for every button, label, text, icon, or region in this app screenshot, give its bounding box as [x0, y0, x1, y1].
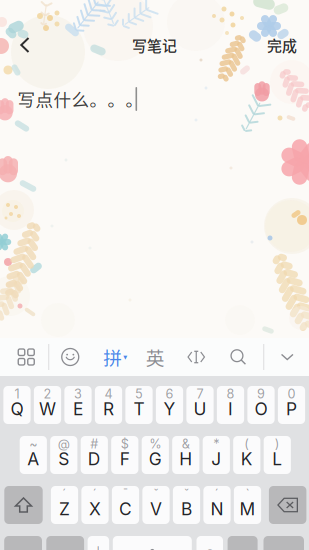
- button[interactable]: Return: [263, 536, 304, 550]
- staticText: ~: [29, 436, 37, 452]
- button[interactable]: Back: [10, 23, 40, 67]
- staticText: F: [120, 448, 130, 469]
- button[interactable]: Emoji: [55, 338, 85, 376]
- staticText: P: [286, 398, 297, 419]
- staticText: X: [89, 498, 101, 519]
- button[interactable]: 2: [34, 386, 61, 424]
- staticText: U: [193, 398, 206, 419]
- button[interactable]: ): [264, 436, 291, 474]
- button[interactable]: Move cursor: [183, 338, 209, 376]
- button[interactable]: ˊ: [51, 486, 78, 524]
- button[interactable]: Vertical bar: [88, 536, 109, 550]
- staticText: ˇ: [153, 486, 158, 502]
- staticText: D: [88, 448, 101, 469]
- button[interactable]: Numbers: [4, 536, 42, 550]
- button[interactable]: 4: [95, 386, 122, 424]
- staticText: S: [58, 448, 69, 469]
- staticText: 写笔记: [132, 34, 177, 56]
- button[interactable]: #: [81, 436, 108, 474]
- staticText: 完成: [267, 34, 297, 56]
- button[interactable]: Keyboard layouts: [11, 338, 41, 376]
- staticText: $: [121, 436, 129, 452]
- button[interactable]: 3: [64, 386, 92, 424]
- button[interactable]: 完成: [260, 23, 304, 67]
- staticText: Z: [59, 498, 70, 519]
- staticText: (: [244, 436, 249, 452]
- staticText: 4: [104, 386, 112, 402]
- staticText: ?: [206, 546, 213, 550]
- staticText: L: [272, 448, 282, 469]
- staticText: ˊ: [92, 486, 97, 502]
- button[interactable]: &: [172, 436, 199, 474]
- staticText: V: [150, 498, 162, 519]
- button[interactable]: ˇ: [142, 486, 170, 524]
- staticText: 写点什么。。。: [17, 86, 143, 111]
- staticText: J: [211, 448, 221, 469]
- staticText: K: [241, 448, 253, 469]
- staticText: M: [239, 498, 255, 519]
- staticText: ): [275, 436, 280, 452]
- staticText: ▾: [123, 352, 127, 362]
- button[interactable]: 6: [156, 386, 183, 424]
- staticText: H: [179, 448, 192, 469]
- staticText: ˋ: [245, 486, 250, 502]
- staticText: |: [96, 546, 101, 550]
- button[interactable]: Symbols: [228, 536, 258, 550]
- staticText: %: [149, 436, 161, 452]
- button[interactable]: ˉ: [112, 486, 139, 524]
- staticText: &: [182, 436, 190, 452]
- button[interactable]: 5: [125, 386, 153, 424]
- button[interactable]: Shift: [4, 486, 43, 524]
- staticText: A: [27, 448, 39, 469]
- staticText: @: [58, 436, 70, 452]
- staticText: *: [213, 436, 219, 452]
- staticText: O: [254, 398, 267, 419]
- staticText: ˊ: [62, 486, 67, 502]
- staticText: B: [181, 498, 192, 519]
- button[interactable]: 9: [247, 386, 275, 424]
- button[interactable]: ˇ: [173, 486, 200, 524]
- button[interactable]: Hide keyboard: [273, 338, 301, 376]
- staticText: 6: [165, 386, 173, 402]
- button[interactable]: %: [142, 436, 169, 474]
- staticText: 8: [226, 386, 234, 402]
- staticText: 9: [257, 386, 265, 402]
- button[interactable]: 英: [142, 338, 168, 376]
- button[interactable]: Switch keyboard: [46, 536, 84, 550]
- button[interactable]: @: [50, 436, 77, 474]
- staticText: 1: [14, 386, 19, 402]
- staticText: Q: [10, 398, 23, 419]
- staticText: 7: [196, 386, 203, 402]
- button[interactable]: Delete: [269, 486, 306, 524]
- staticText: R: [103, 398, 114, 419]
- button[interactable]: ~: [20, 436, 47, 474]
- button[interactable]: Voice input: [113, 536, 192, 550]
- staticText: E: [73, 398, 83, 419]
- button[interactable]: 拼: [100, 338, 130, 376]
- staticText: N: [210, 498, 223, 519]
- button[interactable]: Search: [225, 338, 251, 376]
- button[interactable]: (: [233, 436, 260, 474]
- button[interactable]: ˊ: [203, 486, 231, 524]
- button[interactable]: $: [111, 436, 138, 474]
- button[interactable]: *: [203, 436, 230, 474]
- staticText: 5: [135, 386, 143, 402]
- button[interactable]: 0: [278, 386, 305, 424]
- staticText: G: [149, 448, 162, 469]
- staticText: 2: [43, 386, 51, 402]
- button[interactable]: Question mark: [196, 536, 223, 550]
- staticText: 英: [146, 343, 165, 370]
- staticText: ˊ: [214, 486, 219, 502]
- button[interactable]: 1: [3, 386, 31, 424]
- staticText: 0: [287, 386, 295, 402]
- staticText: I: [228, 398, 233, 419]
- staticText: T: [133, 398, 144, 419]
- staticText: W: [39, 398, 56, 419]
- staticText: 拼: [103, 343, 122, 370]
- button[interactable]: 8: [217, 386, 244, 424]
- button[interactable]: ˊ: [81, 486, 109, 524]
- button[interactable]: ˋ: [234, 486, 261, 524]
- button[interactable]: 7: [186, 386, 214, 424]
- staticText: C: [119, 498, 132, 519]
- staticText: 3: [74, 386, 82, 402]
